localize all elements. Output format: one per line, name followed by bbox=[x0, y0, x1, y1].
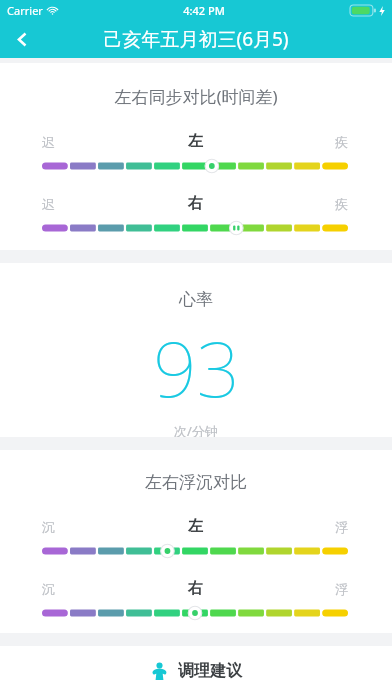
staticText: 迟 bbox=[42, 134, 55, 150]
button[interactable]: 调理建议 bbox=[0, 646, 392, 696]
staticText: Carrier bbox=[7, 3, 43, 18]
staticText: 浮 bbox=[335, 519, 348, 535]
staticText: 左 bbox=[188, 517, 203, 536]
staticText: 93 bbox=[153, 316, 240, 420]
staticText: 左右同步对比(时间差) bbox=[114, 85, 278, 108]
staticText: 沉 bbox=[42, 581, 55, 597]
staticText: 调理建议 bbox=[178, 661, 242, 681]
staticText: 右 bbox=[188, 194, 203, 213]
staticText: 心率 bbox=[179, 289, 213, 310]
staticText: 左 bbox=[188, 132, 203, 151]
staticText: 迟 bbox=[42, 196, 55, 212]
staticText: 左右浮沉对比 bbox=[145, 472, 247, 493]
staticText: 疾 bbox=[335, 196, 348, 212]
staticText: 疾 bbox=[335, 134, 348, 150]
staticText: 己亥年五月初三(6月5) bbox=[103, 26, 289, 52]
staticText: 沉 bbox=[42, 519, 55, 535]
staticText: 浮 bbox=[335, 581, 348, 597]
staticText: 右 bbox=[188, 579, 203, 598]
button[interactable]: Back bbox=[0, 20, 44, 58]
staticText: 4:42 PM bbox=[183, 3, 225, 18]
staticText: 次/分钟 bbox=[174, 422, 218, 437]
